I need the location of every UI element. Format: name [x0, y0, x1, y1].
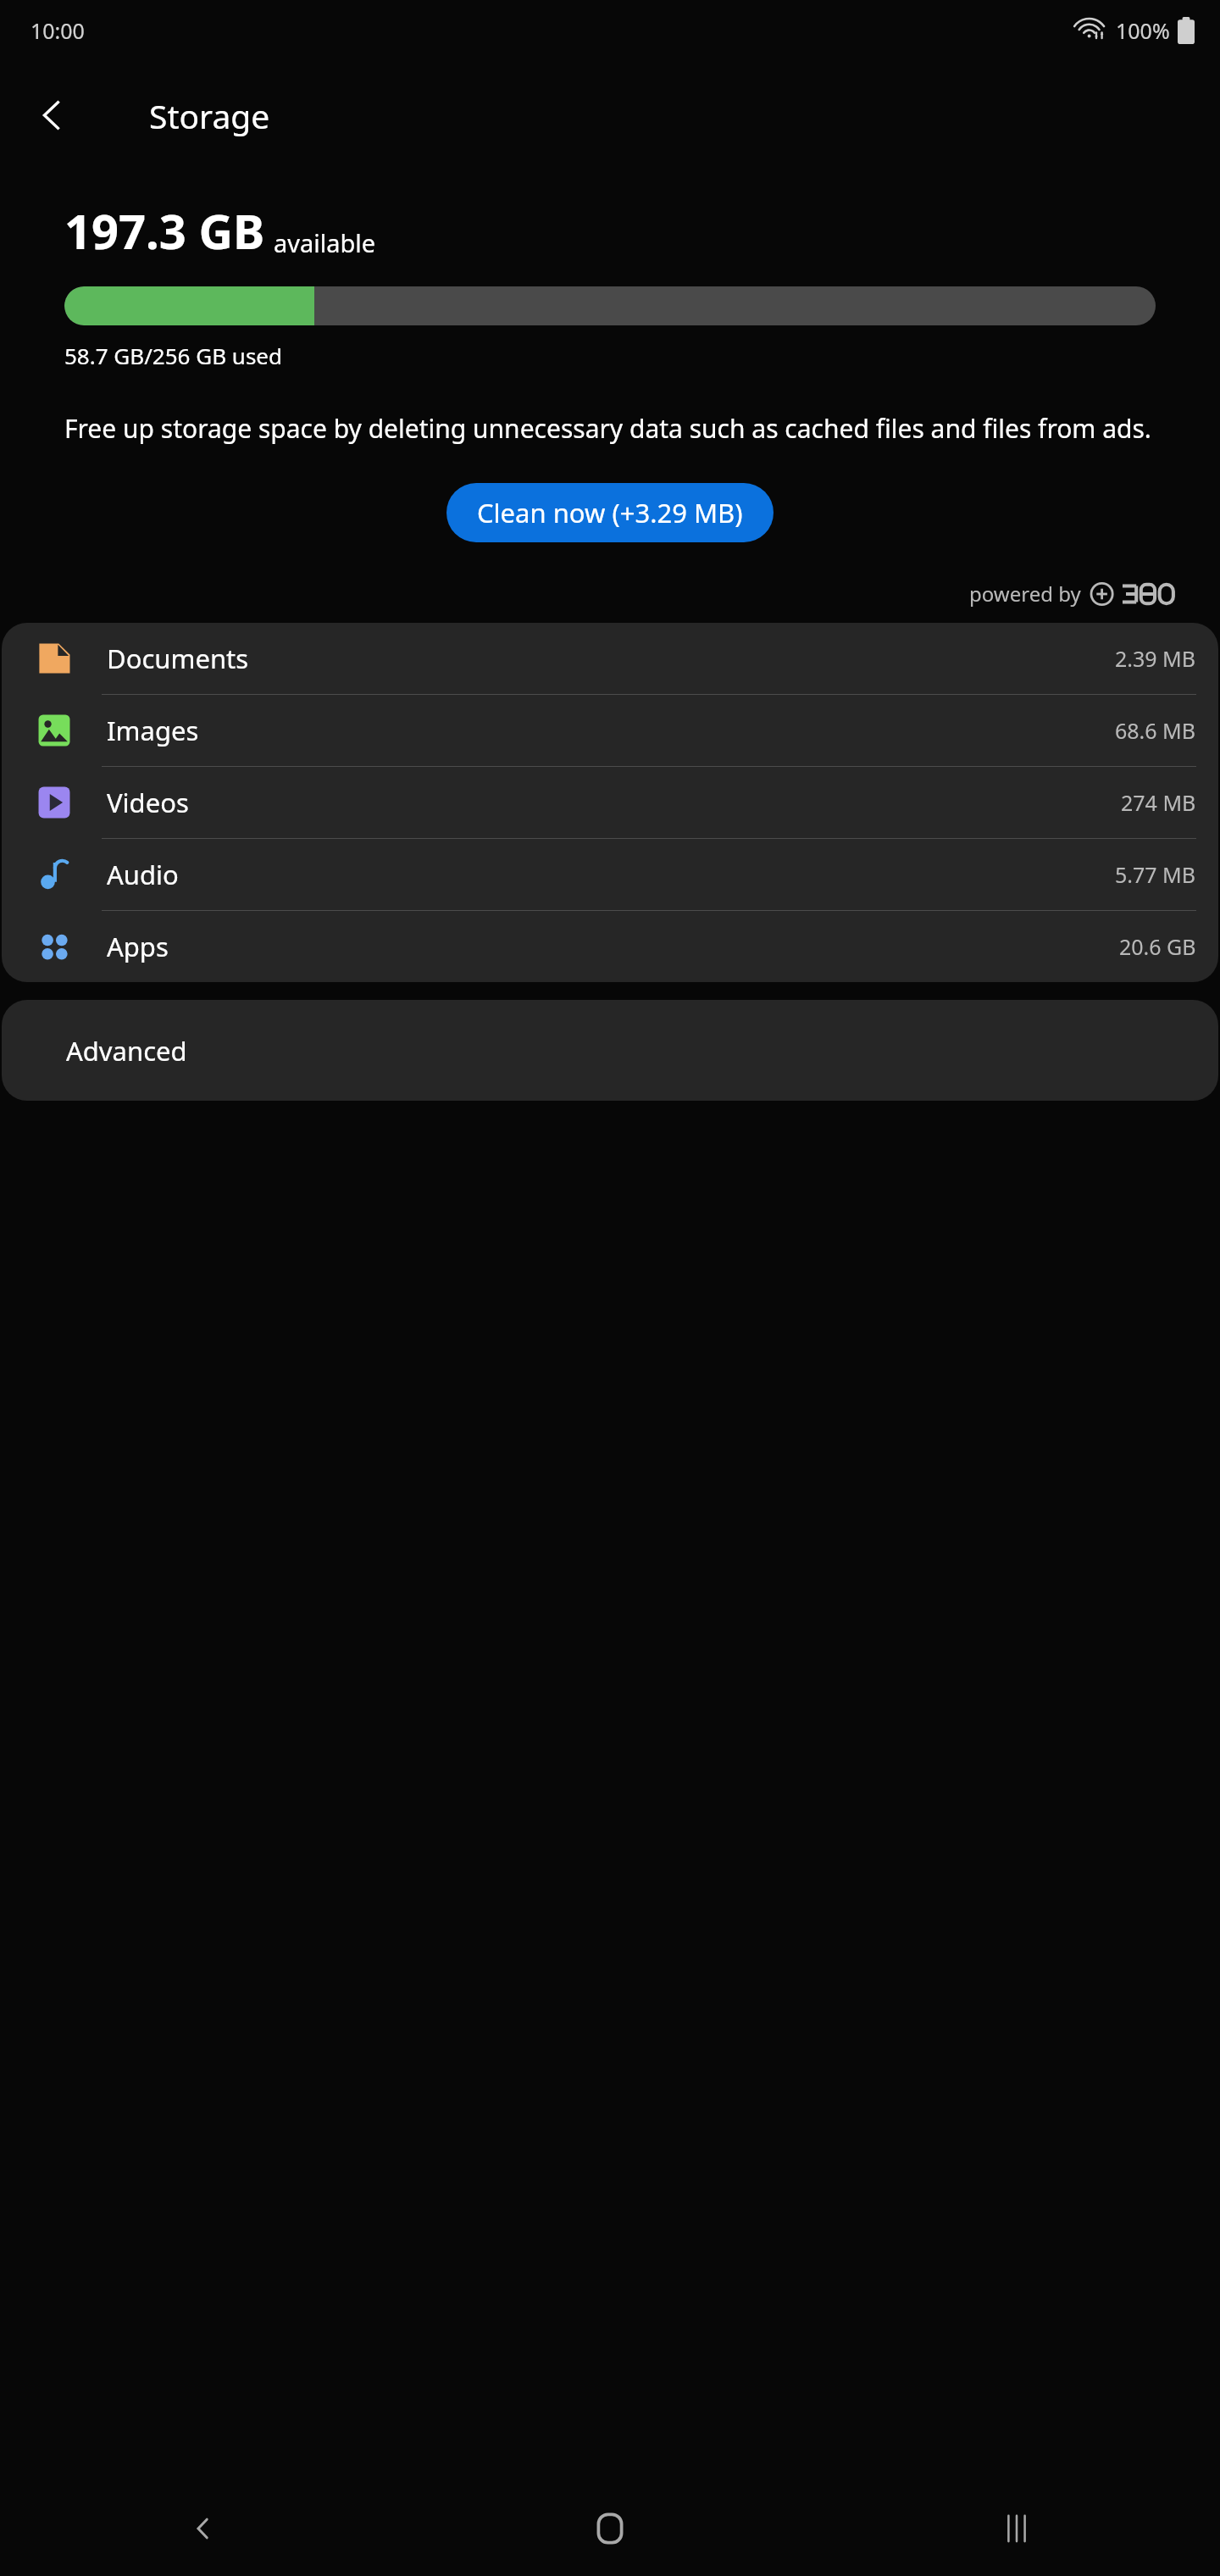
button[interactable]: Back	[17, 80, 88, 151]
staticText: 100%	[1116, 16, 1170, 45]
staticText: Videos	[107, 785, 189, 820]
staticText: Audio	[107, 857, 179, 892]
staticText: Advanced	[66, 1033, 187, 1069]
staticText: 274 MB	[1121, 788, 1196, 817]
staticText: 68.6 MB	[1115, 716, 1196, 745]
staticText: 58.7 GB/256 GB used	[64, 341, 282, 370]
button[interactable]: Audio	[2, 839, 1218, 910]
button[interactable]: Recents	[813, 2481, 1220, 2576]
staticText: 5.77 MB	[1115, 860, 1196, 889]
staticText: 197.3 GB	[64, 198, 265, 263]
staticText: Clean now (+3.29 MB)	[477, 495, 743, 530]
button[interactable]: Home	[407, 2481, 813, 2576]
button[interactable]: Clean now (+3.29 MB)	[446, 483, 774, 542]
staticText: 2.39 MB	[1115, 644, 1196, 673]
button[interactable]: Back	[0, 2481, 407, 2576]
button[interactable]: Advanced	[2, 1000, 1218, 1101]
staticText: Free up storage space by deleting unnece…	[64, 411, 1151, 446]
button[interactable]: Videos	[2, 767, 1218, 838]
staticText: Apps	[107, 929, 169, 964]
staticText: available	[274, 226, 376, 259]
button[interactable]: Images	[2, 695, 1218, 766]
button[interactable]: Apps	[2, 911, 1218, 982]
staticText: powered by	[969, 580, 1081, 608]
staticText: Storage	[149, 93, 270, 138]
staticText: 10:00	[30, 16, 85, 45]
staticText: 20.6 GB	[1119, 932, 1196, 961]
button[interactable]: Documents	[2, 623, 1218, 694]
staticText: Documents	[107, 641, 249, 676]
staticText: Images	[107, 713, 199, 748]
